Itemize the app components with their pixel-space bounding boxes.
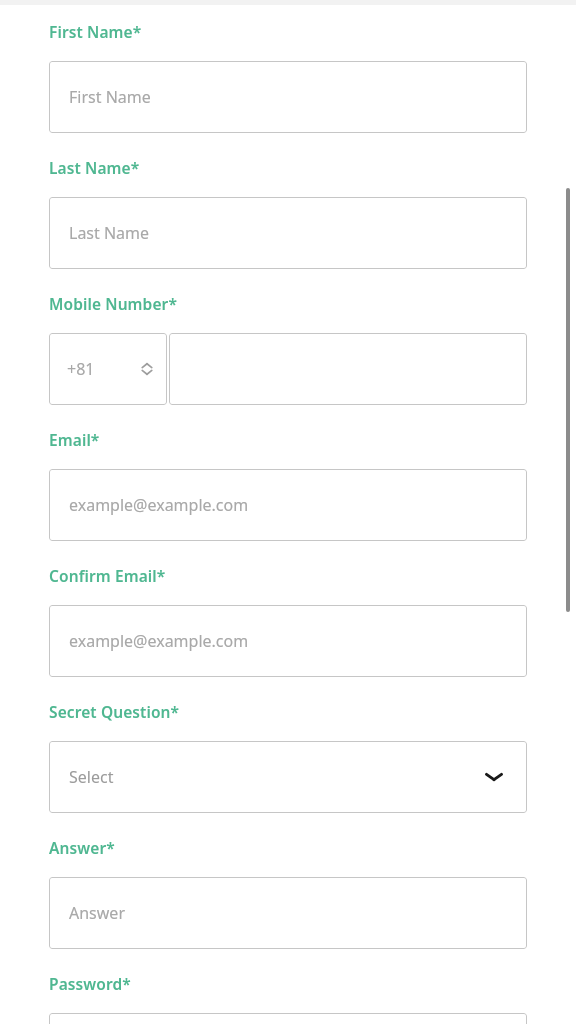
staticText: First Name* — [49, 21, 142, 42]
staticText: Answer* — [49, 837, 115, 858]
button[interactable]: Answer — [49, 877, 527, 949]
button[interactable]: Mobile number — [169, 333, 527, 405]
staticText: +81 — [67, 358, 95, 380]
button[interactable] — [49, 1013, 527, 1024]
staticText: Answer — [69, 902, 125, 924]
staticText: First Name — [69, 86, 151, 108]
button[interactable]: Select country calling code — [49, 333, 167, 405]
staticText: Secret Question* — [49, 701, 180, 722]
button[interactable]: example@example.com — [49, 605, 527, 677]
button[interactable]: Select — [49, 741, 527, 813]
staticText: example@example.com — [69, 630, 249, 652]
staticText: Email* — [49, 429, 100, 450]
staticText: Last Name* — [49, 157, 140, 178]
staticText: example@example.com — [69, 494, 249, 516]
staticText: Mobile Number* — [49, 293, 177, 314]
staticText: Password* — [49, 973, 131, 994]
button[interactable]: Last Name — [49, 197, 527, 269]
staticText: Select — [69, 766, 114, 788]
staticText: Confirm Email* — [49, 565, 166, 586]
button[interactable]: First Name — [49, 61, 527, 133]
staticText: Last Name — [69, 222, 150, 244]
button[interactable]: example@example.com — [49, 469, 527, 541]
